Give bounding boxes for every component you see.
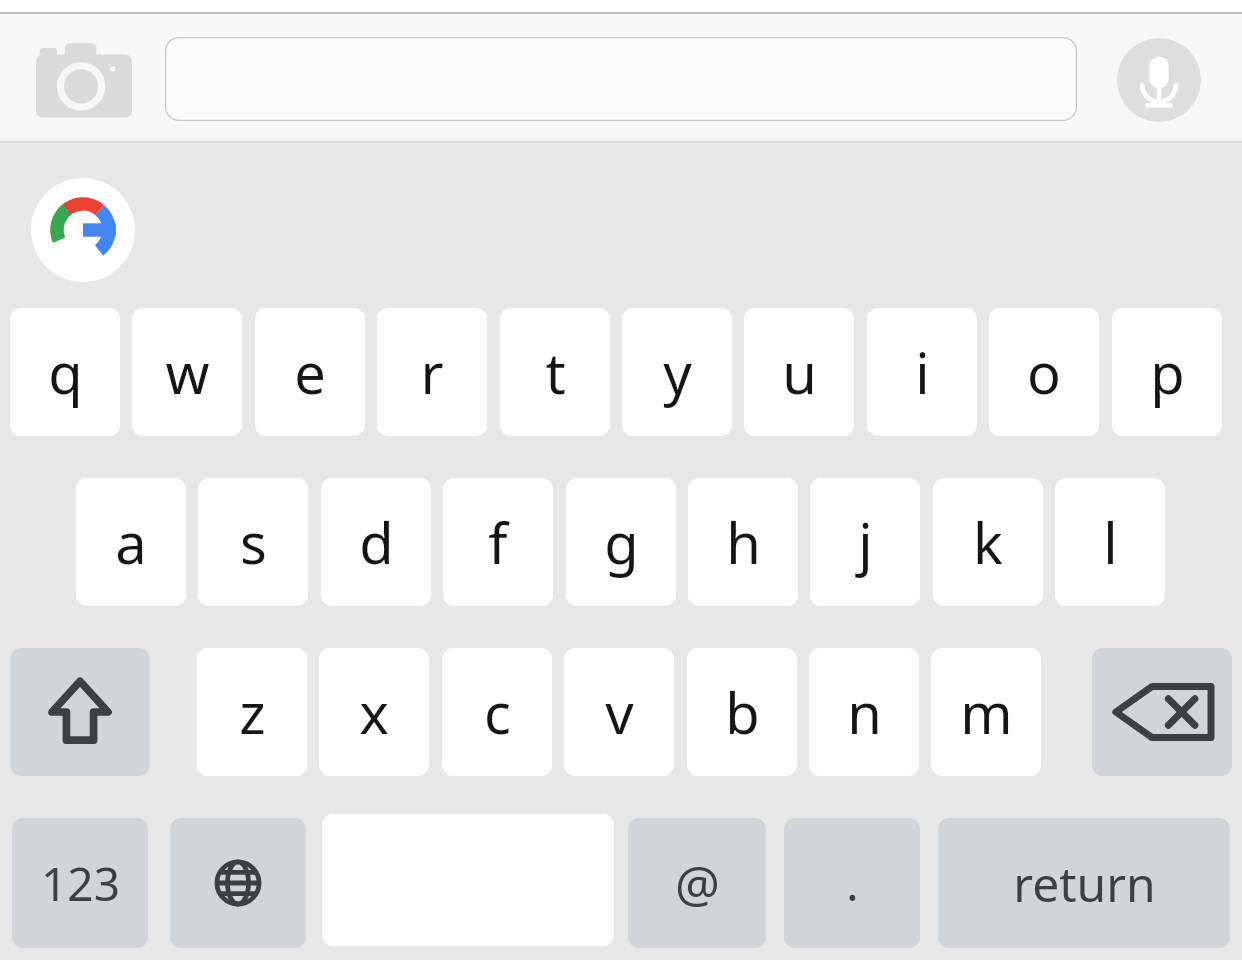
staticText: c (484, 674, 511, 750)
staticText: f (488, 504, 508, 580)
button[interactable]: r (377, 308, 487, 436)
button[interactable]: Google (31, 178, 135, 282)
staticText: h (726, 504, 761, 580)
staticText: return (1013, 851, 1156, 916)
staticText: m (960, 674, 1013, 750)
button[interactable]: . (784, 818, 920, 948)
button[interactable]: v (564, 648, 674, 776)
staticText: w (165, 334, 210, 410)
staticText: u (782, 334, 817, 410)
button[interactable]: @ (628, 818, 766, 948)
button[interactable]: a (76, 478, 186, 606)
button[interactable]: c (442, 648, 552, 776)
staticText: i (915, 334, 930, 410)
staticText: o (1027, 334, 1061, 410)
staticText: d (359, 504, 394, 580)
staticText: p (1150, 334, 1185, 410)
button[interactable]: Backspace (1092, 648, 1232, 776)
button[interactable]: Shift (10, 648, 150, 776)
staticText: s (240, 504, 267, 580)
button[interactable]: g (566, 478, 676, 606)
staticText: . (846, 852, 859, 915)
button[interactable]: x (319, 648, 429, 776)
button[interactable]: m (931, 648, 1041, 776)
staticText: g (604, 504, 639, 580)
button[interactable]: p (1112, 308, 1222, 436)
staticText: @ (675, 849, 720, 917)
staticText: x (359, 674, 389, 750)
button[interactable] (165, 37, 1077, 121)
button[interactable]: Voice search (1117, 38, 1201, 122)
button[interactable]: l (1055, 478, 1165, 606)
button[interactable]: e (255, 308, 365, 436)
staticText: t (545, 334, 566, 410)
button[interactable]: u (744, 308, 854, 436)
staticText: z (239, 674, 266, 750)
button[interactable]: i (867, 308, 977, 436)
button[interactable]: d (321, 478, 431, 606)
button[interactable]: n (809, 648, 919, 776)
staticText: y (663, 334, 692, 410)
button[interactable]: 123 (12, 818, 148, 948)
button[interactable]: f (443, 478, 553, 606)
staticText: v (605, 674, 634, 750)
staticText: a (115, 504, 147, 580)
button[interactable]: t (500, 308, 610, 436)
button[interactable]: return (938, 818, 1230, 948)
button[interactable]: Change keyboard language (170, 818, 306, 948)
staticText: l (1103, 504, 1118, 580)
button[interactable]: z (197, 648, 307, 776)
staticText: n (847, 674, 882, 750)
staticText: j (858, 504, 873, 580)
button[interactable]: o (989, 308, 1099, 436)
staticText: e (294, 334, 326, 410)
button[interactable]: k (933, 478, 1043, 606)
staticText: q (48, 334, 83, 410)
staticText: b (725, 674, 760, 750)
staticText: 123 (41, 852, 120, 915)
button[interactable]: j (810, 478, 920, 606)
button[interactable]: y (622, 308, 732, 436)
button[interactable]: h (688, 478, 798, 606)
button[interactable]: s (198, 478, 308, 606)
button[interactable]: b (687, 648, 797, 776)
staticText: k (973, 504, 1003, 580)
button[interactable]: q (10, 308, 120, 436)
staticText: r (420, 334, 444, 410)
button[interactable]: w (132, 308, 242, 436)
button[interactable]: Camera (36, 40, 132, 120)
